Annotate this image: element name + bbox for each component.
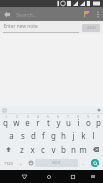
staticText: f (42, 130, 45, 141)
staticText: q (3, 117, 8, 128)
button[interactable]: m (78, 142, 88, 156)
button[interactable]: Back (17, 170, 32, 183)
staticText: Enter new note (3, 23, 38, 30)
staticText: t (47, 117, 50, 128)
button[interactable]: 9 (83, 114, 93, 128)
staticText: v (51, 144, 56, 155)
staticText: 4 (37, 115, 39, 119)
button[interactable]: 7 (63, 114, 73, 128)
staticText: p (96, 117, 101, 128)
button[interactable]: 1 (0, 114, 11, 128)
staticText: j (72, 130, 75, 141)
staticText: n (71, 144, 76, 155)
button[interactable]: Clipboard (0, 106, 8, 114)
staticText: 9 (87, 115, 89, 119)
button[interactable]: Search... (14, 7, 81, 21)
staticText: 2 (16, 115, 18, 119)
button[interactable]: Keyboard settings (95, 106, 103, 114)
staticText: s (21, 130, 25, 141)
button[interactable]: Period (78, 156, 87, 170)
staticText: . (82, 159, 84, 167)
staticText: i (77, 117, 80, 128)
staticText: Search... (16, 11, 37, 18)
button[interactable]: 0 (93, 114, 103, 128)
staticText: d (31, 130, 36, 141)
button[interactable]: a (6, 128, 17, 142)
button[interactable]: g (48, 128, 58, 142)
staticText: y (56, 117, 61, 128)
staticText: x (30, 144, 35, 155)
button[interactable]: Search (87, 156, 103, 170)
staticText: k (81, 130, 86, 141)
staticText: 5 (47, 115, 49, 119)
staticText: a (9, 130, 14, 141)
button[interactable]: k (78, 128, 88, 142)
button[interactable]: l (88, 128, 98, 142)
button[interactable]: Home (41, 170, 56, 183)
button[interactable]: 6 (53, 114, 63, 128)
button[interactable]: Flag (81, 7, 93, 21)
staticText: 3 (27, 115, 29, 119)
button[interactable]: c (38, 142, 48, 156)
button[interactable]: Backspace (88, 142, 103, 156)
button[interactable]: v (48, 142, 58, 156)
button[interactable]: 2 (11, 114, 22, 128)
staticText: EN-IT (52, 161, 61, 165)
button[interactable]: Space (35, 159, 78, 167)
button[interactable]: 4 (33, 114, 43, 128)
staticText: l (92, 130, 95, 141)
button[interactable]: x (27, 142, 38, 156)
staticText: h (61, 130, 66, 141)
staticText: 1 (5, 115, 7, 119)
button[interactable]: Shift (0, 142, 16, 156)
button[interactable]: ADD (82, 24, 100, 32)
button[interactable]: Recent apps (65, 170, 80, 183)
staticText: ?123 (4, 161, 13, 166)
button[interactable]: Emoji (26, 156, 35, 170)
button[interactable]: s (17, 128, 28, 142)
staticText: g (51, 130, 56, 141)
button[interactable]: Comma (16, 156, 26, 170)
staticText: z (20, 144, 24, 155)
staticText: , (20, 159, 22, 167)
staticText: c (41, 144, 45, 155)
button[interactable]: n (68, 142, 78, 156)
button[interactable]: z (16, 142, 27, 156)
button[interactable]: 5 (43, 114, 53, 128)
staticText: 7 (67, 115, 69, 119)
button[interactable]: d (28, 128, 38, 142)
button[interactable]: ?123 (0, 156, 16, 170)
staticText: r (36, 117, 40, 128)
staticText: m (79, 144, 87, 155)
staticText: b (61, 144, 66, 155)
staticText: e (25, 117, 30, 128)
staticText: 0 (97, 115, 99, 119)
button[interactable]: Back (0, 7, 14, 21)
staticText: o (86, 117, 91, 128)
button[interactable]: Enter new note (3, 23, 79, 33)
staticText: 8 (77, 115, 79, 119)
button[interactable]: b (58, 142, 68, 156)
button[interactable]: j (68, 128, 78, 142)
button[interactable]: f (38, 128, 48, 142)
staticText: ADD (87, 25, 96, 31)
staticText: u (66, 117, 71, 128)
staticText: 6 (57, 115, 59, 119)
button[interactable]: h (58, 128, 68, 142)
button[interactable]: More options (93, 7, 103, 21)
button[interactable]: 8 (73, 114, 83, 128)
button[interactable]: 3 (22, 114, 33, 128)
staticText: w (13, 117, 20, 128)
button[interactable]: Switch keyboard (85, 170, 100, 183)
